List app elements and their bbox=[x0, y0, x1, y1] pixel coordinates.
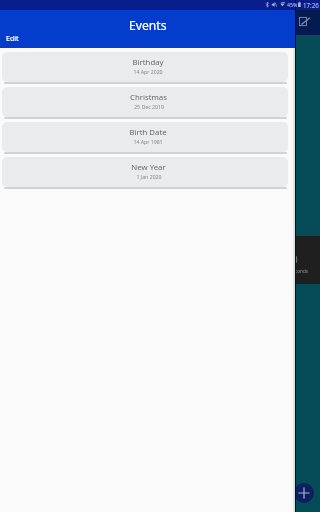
button[interactable]: Edit bbox=[0, 30, 23, 48]
button[interactable]: Christmas bbox=[2, 87, 288, 117]
staticText: Birthday bbox=[132, 57, 164, 68]
staticText: Events bbox=[129, 17, 167, 34]
button[interactable]: Add bbox=[294, 483, 314, 503]
staticText: New Year bbox=[131, 162, 166, 173]
staticText: 17:26 bbox=[303, 1, 319, 9]
button[interactable]: New Year bbox=[2, 157, 288, 187]
staticText: Birth Date bbox=[129, 127, 167, 138]
staticText: Edit bbox=[6, 34, 19, 44]
button[interactable]: Birthday bbox=[2, 52, 288, 82]
button[interactable]: Birth Date bbox=[2, 122, 288, 152]
staticText: 0 bbox=[293, 254, 298, 265]
staticText: 25 Dec 2019 bbox=[134, 103, 164, 110]
staticText: 45% bbox=[287, 1, 298, 8]
staticText: 14 Apr 2020 bbox=[133, 68, 163, 75]
staticText: 14 Apr 1981 bbox=[133, 138, 163, 145]
staticText: Christmas bbox=[130, 92, 167, 103]
button[interactable]: Compose bbox=[299, 17, 310, 26]
staticText: 1 Jan 2020 bbox=[136, 173, 162, 180]
staticText: Seconds bbox=[290, 268, 308, 274]
